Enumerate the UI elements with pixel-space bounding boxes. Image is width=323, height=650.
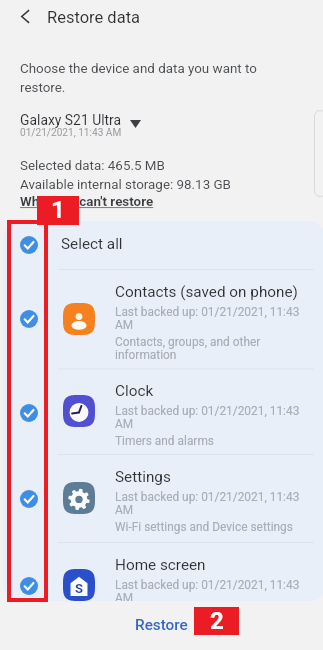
button[interactable]: Selected bbox=[14, 304, 43, 333]
staticText: Select all bbox=[61, 235, 123, 253]
button[interactable]: Back bbox=[10, 1, 40, 31]
staticText: Contacts (saved on phone) bbox=[115, 283, 298, 301]
staticText: Clock bbox=[115, 382, 154, 400]
button[interactable]: S bbox=[3, 543, 323, 602]
staticText: Selected data: 465.5 MB bbox=[20, 158, 165, 174]
staticText: Last backed up: 01/21/2021, 11:43 AM bbox=[115, 490, 300, 517]
staticText: 1 bbox=[51, 196, 65, 224]
staticText: Last backed up: 01/21/2021, 11:43 AM bbox=[115, 578, 300, 602]
button[interactable]: Contacts (saved on phone) bbox=[3, 270, 323, 370]
staticText: Restore data bbox=[47, 8, 141, 27]
staticText: Timers and alarms bbox=[115, 434, 214, 448]
button[interactable]: Selected bbox=[14, 398, 43, 427]
staticText: 01/21/2021, 11:43 AM bbox=[20, 127, 122, 139]
staticText: Wi-Fi settings and Device settings bbox=[115, 520, 293, 534]
staticText: 2 bbox=[210, 607, 224, 635]
button[interactable]: Clock bbox=[3, 369, 323, 455]
staticText: Choose the device and data you want to r… bbox=[20, 61, 257, 95]
staticText: S bbox=[75, 581, 84, 596]
button[interactable]: Restore bbox=[127, 610, 196, 640]
button[interactable]: Choose device bbox=[125, 115, 145, 135]
staticText: Restore bbox=[135, 616, 188, 634]
staticText: Settings bbox=[115, 468, 171, 486]
staticText: Home screen bbox=[115, 556, 206, 574]
button[interactable]: Selected bbox=[14, 571, 43, 600]
button[interactable]: Select all bbox=[3, 221, 323, 270]
staticText: What you can't restore bbox=[20, 194, 154, 210]
staticText: Contacts, groups, and other information bbox=[115, 335, 261, 362]
button[interactable]: What you can't restore bbox=[20, 194, 154, 210]
staticText: Galaxy S21 Ultra bbox=[20, 112, 122, 128]
staticText: Last backed up: 01/21/2021, 11:43 AM bbox=[115, 305, 300, 332]
button[interactable]: Selected bbox=[14, 230, 43, 259]
staticText: Last backed up: 01/21/2021, 11:43 AM bbox=[115, 404, 300, 431]
button[interactable]: Settings bbox=[3, 455, 323, 543]
button[interactable]: Selected bbox=[14, 484, 43, 513]
staticText: Available internal storage: 98.13 GB bbox=[20, 177, 231, 193]
